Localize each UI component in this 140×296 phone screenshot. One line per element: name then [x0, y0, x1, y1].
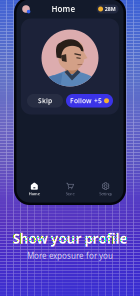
staticText: 28M	[105, 5, 116, 13]
staticText: Store	[65, 191, 74, 196]
button[interactable]: Skip	[27, 94, 63, 107]
button[interactable]: Profile	[21, 4, 30, 13]
button[interactable]: Follow +5	[66, 94, 113, 107]
button[interactable]: Store	[52, 183, 88, 196]
staticText: More exposure for you	[27, 250, 113, 261]
staticText: Skip	[38, 96, 52, 105]
staticText: Home	[29, 191, 40, 196]
staticText: Home	[51, 4, 75, 14]
staticText: Settings	[99, 191, 112, 196]
staticText: Follow +5	[70, 96, 102, 105]
button[interactable]: Settings	[88, 182, 123, 196]
button[interactable]: Home	[16, 183, 52, 196]
button[interactable]: Coins 28M	[97, 5, 118, 13]
staticText: Show your profile	[12, 230, 127, 247]
